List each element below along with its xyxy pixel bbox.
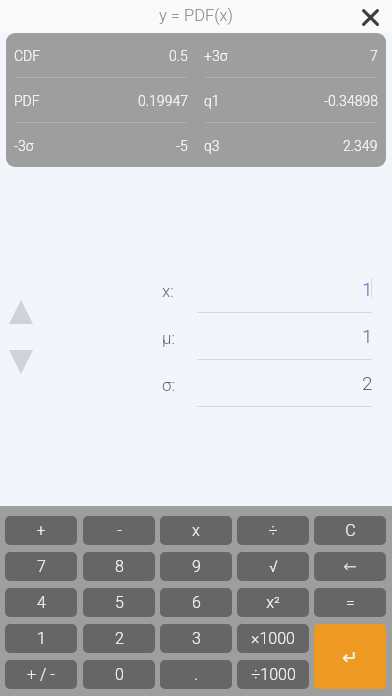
button[interactable]: PDF: [6, 78, 196, 122]
button[interactable]: σ:: [155, 366, 372, 407]
button[interactable]: 5: [83, 588, 155, 617]
staticText: y = PDF(x): [159, 6, 233, 25]
button[interactable]: ×1000: [237, 624, 309, 653]
button[interactable]: =: [314, 588, 386, 617]
staticText: 4: [37, 593, 46, 612]
staticText: x:: [162, 281, 174, 301]
button[interactable]: +3σ: [196, 33, 386, 77]
staticText: ←: [343, 557, 357, 576]
staticText: σ:: [162, 375, 176, 395]
staticText: 0.19947: [138, 93, 188, 109]
button[interactable]: .: [160, 660, 232, 689]
staticText: =: [346, 593, 355, 612]
staticText: 1: [362, 325, 373, 347]
button[interactable]: 8: [83, 552, 155, 581]
button[interactable]: 4: [5, 588, 77, 617]
staticText: 7: [37, 557, 46, 576]
staticText: q3: [204, 138, 220, 154]
button[interactable]: μ:: [155, 319, 372, 360]
staticText: +3σ: [204, 48, 228, 64]
button[interactable]: ↵: [314, 624, 386, 689]
button[interactable]: √: [237, 552, 309, 581]
staticText: 2: [115, 629, 124, 648]
staticText: x²: [266, 593, 280, 612]
staticText: ÷1000: [251, 665, 296, 684]
staticText: -3σ: [14, 138, 34, 154]
staticText: C: [345, 521, 356, 540]
button[interactable]: CDF: [6, 33, 196, 77]
button[interactable]: ÷1000: [237, 660, 309, 689]
staticText: ÷: [268, 521, 278, 540]
staticText: 7: [370, 48, 378, 64]
staticText: 1: [37, 629, 46, 648]
button[interactable]: ←: [314, 552, 386, 581]
button[interactable]: x²: [237, 588, 309, 617]
button[interactable]: x:: [155, 272, 372, 313]
button[interactable]: 7: [5, 552, 77, 581]
staticText: .: [194, 665, 198, 684]
staticText: PDF: [14, 93, 40, 109]
staticText: 0.5: [169, 48, 188, 64]
staticText: 0: [115, 665, 124, 684]
button[interactable]: Close: [355, 2, 385, 32]
staticText: -: [117, 521, 122, 540]
button[interactable]: q1: [196, 78, 386, 122]
staticText: -0.34898: [324, 93, 378, 109]
staticText: 2.349: [343, 138, 378, 154]
staticText: +: [36, 521, 46, 540]
button[interactable]: 0: [83, 660, 155, 689]
button[interactable]: q3: [196, 123, 386, 167]
button[interactable]: -: [83, 516, 155, 545]
staticText: CDF: [14, 48, 41, 64]
staticText: 3: [192, 629, 201, 648]
staticText: q1: [204, 93, 220, 109]
button[interactable]: 3: [160, 624, 232, 653]
button[interactable]: 2: [83, 624, 155, 653]
staticText: √: [269, 557, 278, 576]
button[interactable]: Increase value: [6, 297, 36, 327]
button[interactable]: 6: [160, 588, 232, 617]
staticText: μ:: [162, 328, 176, 348]
staticText: 2: [362, 372, 373, 394]
staticText: 1: [362, 278, 373, 300]
button[interactable]: x: [160, 516, 232, 545]
staticText: + / -: [27, 665, 55, 684]
staticText: x: [192, 521, 200, 540]
staticText: 8: [115, 557, 124, 576]
button[interactable]: -3σ: [6, 123, 196, 167]
staticText: ↵: [342, 646, 358, 668]
button[interactable]: ÷: [237, 516, 309, 545]
staticText: 9: [192, 557, 201, 576]
staticText: 6: [192, 593, 201, 612]
staticText: ×1000: [251, 629, 295, 648]
button[interactable]: + / -: [5, 660, 77, 689]
staticText: 5: [115, 593, 124, 612]
button[interactable]: 1: [5, 624, 77, 653]
button[interactable]: 9: [160, 552, 232, 581]
button[interactable]: +: [5, 516, 77, 545]
staticText: -5: [176, 138, 188, 154]
button[interactable]: C: [314, 516, 386, 545]
button[interactable]: Decrease value: [6, 347, 36, 377]
